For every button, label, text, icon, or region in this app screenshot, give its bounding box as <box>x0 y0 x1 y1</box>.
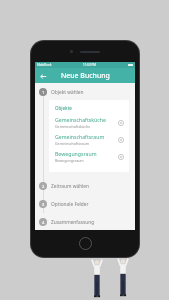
button[interactable]: Objekte <box>49 100 129 172</box>
staticText: 2 <box>42 184 45 189</box>
other: Home <box>78 236 93 251</box>
staticText: 11:53 PM <box>83 63 96 67</box>
staticText: Objekt wählen <box>51 89 84 96</box>
staticText: 3 <box>42 202 45 207</box>
button[interactable]: Back <box>38 71 48 81</box>
button[interactable]: Select Gemeinschaftsraum <box>117 136 125 144</box>
staticText: 4 <box>42 220 45 225</box>
staticText: Gemeinschaftsküche <box>55 116 106 123</box>
staticText: Bewegungsraum <box>55 158 84 163</box>
button[interactable]: 3 <box>39 199 129 209</box>
staticText: Optionale Felder <box>51 201 89 208</box>
staticText: Zeitraum wählen <box>51 183 90 190</box>
staticText: Bewegungsraum <box>55 150 97 157</box>
staticText: Neue Buchung <box>61 71 110 81</box>
staticText: Gemeinschaftsraum <box>55 133 105 140</box>
staticText: Zusammenfassung <box>51 219 95 226</box>
staticText: Gemeinschaftsraum <box>55 141 90 146</box>
button[interactable]: 2 <box>39 181 129 191</box>
button[interactable]: Select Bewegungsraum <box>117 153 125 161</box>
button[interactable]: Gemeinschaftsküche <box>55 116 125 129</box>
staticText: 1 <box>42 90 45 95</box>
staticText: Mobilfunk <box>37 63 52 67</box>
button[interactable]: Gemeinschaftsraum <box>55 133 125 146</box>
staticText: Objekte <box>55 105 72 111</box>
button[interactable]: Bewegungsraum <box>55 150 125 163</box>
button[interactable]: Select Gemeinschaftsküche <box>117 119 125 127</box>
button[interactable]: 4 <box>39 217 129 227</box>
staticText: Gemeinschaftsküche <box>55 124 91 129</box>
button[interactable]: 1 <box>39 87 129 97</box>
